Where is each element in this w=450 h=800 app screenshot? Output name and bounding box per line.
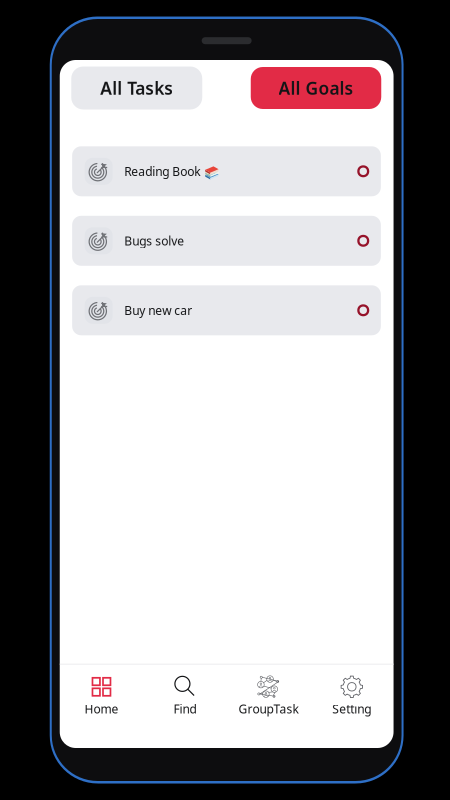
staticText: Reading Book (124, 163, 200, 179)
button[interactable]: All Tasks (71, 66, 202, 109)
staticText: Find (173, 701, 196, 717)
button[interactable]: GroupTask (227, 665, 310, 748)
button[interactable]: Find (143, 665, 227, 748)
button[interactable]: Reading Book (72, 146, 381, 196)
button[interactable]: Bugs solve (72, 216, 381, 266)
staticText: Home (84, 701, 118, 717)
button[interactable]: Setting (310, 665, 394, 748)
staticText: Bugs solve (124, 233, 184, 249)
staticText: All Goals (278, 76, 353, 99)
button[interactable]: Buy new car (72, 285, 381, 335)
staticText: Buy new car (124, 302, 192, 318)
button[interactable]: All Goals (251, 67, 381, 109)
staticText: GroupTask (238, 701, 298, 717)
button[interactable]: Home (60, 665, 143, 748)
staticText: All Tasks (100, 76, 173, 99)
staticText: Setting (332, 701, 371, 717)
